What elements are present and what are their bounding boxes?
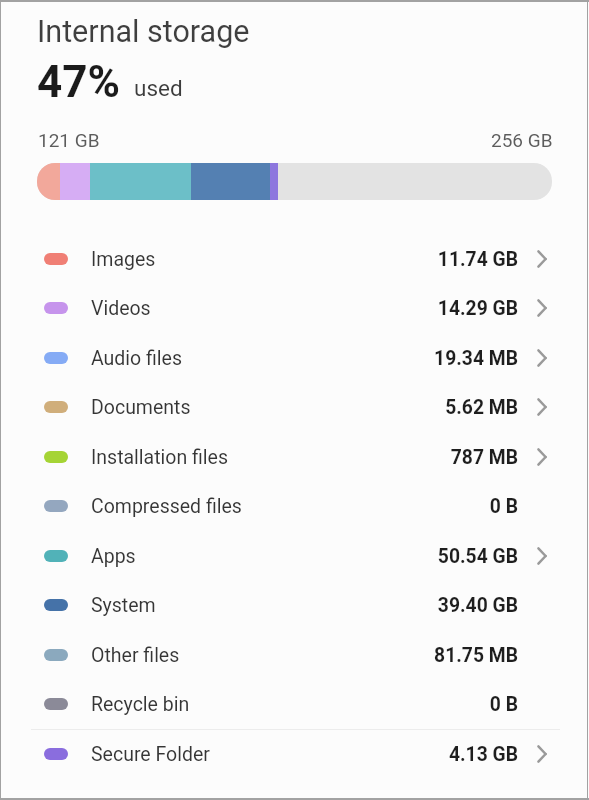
staticText: Documents bbox=[91, 396, 191, 419]
button[interactable]: Other files bbox=[0, 630, 589, 680]
staticText: Other files bbox=[91, 644, 180, 667]
button[interactable]: Installation files bbox=[0, 432, 589, 482]
staticText: Secure Folder bbox=[91, 743, 210, 766]
other: Open Audio files details bbox=[518, 348, 560, 368]
button[interactable]: Documents bbox=[0, 382, 589, 432]
staticText: 4.13 GB bbox=[448, 743, 518, 766]
other: Open Apps details bbox=[518, 546, 560, 566]
staticText: Internal storage bbox=[37, 14, 250, 50]
staticText: Recycle bin bbox=[91, 693, 190, 716]
staticText: 47% bbox=[37, 56, 120, 108]
button[interactable]: Audio files bbox=[0, 333, 589, 383]
other: Open Images details bbox=[518, 249, 560, 269]
button[interactable]: System bbox=[0, 580, 589, 630]
staticText: 0 B bbox=[489, 693, 518, 716]
other: Open Installation files details bbox=[518, 447, 560, 467]
staticText: 0 B bbox=[489, 495, 518, 518]
staticText: System bbox=[91, 594, 156, 617]
button[interactable]: Compressed files bbox=[0, 481, 589, 531]
staticText: 14.29 GB bbox=[437, 297, 518, 320]
staticText: Videos bbox=[91, 297, 151, 320]
staticText: 121 GB bbox=[38, 129, 100, 151]
staticText: Compressed files bbox=[91, 495, 242, 518]
button[interactable]: Secure Folder bbox=[0, 729, 589, 779]
button[interactable]: Recycle bin bbox=[0, 679, 589, 729]
staticText: 787 MB bbox=[450, 446, 518, 469]
staticText: Audio files bbox=[91, 347, 183, 370]
button[interactable]: Videos bbox=[0, 283, 589, 333]
staticText: 50.54 GB bbox=[437, 545, 518, 568]
button[interactable]: Apps bbox=[0, 531, 589, 581]
staticText: 256 GB bbox=[491, 129, 553, 151]
staticText: Apps bbox=[91, 545, 136, 568]
staticText: Images bbox=[91, 248, 156, 271]
staticText: 5.62 MB bbox=[445, 396, 518, 419]
staticText: 19.34 MB bbox=[434, 347, 518, 370]
button[interactable]: Images bbox=[0, 234, 589, 284]
other: Open Documents details bbox=[518, 397, 560, 417]
other: Open Videos details bbox=[518, 298, 560, 318]
staticText: Installation files bbox=[91, 446, 229, 469]
staticText: 11.74 GB bbox=[437, 248, 518, 271]
other: Open Secure Folder details bbox=[518, 744, 560, 764]
staticText: used bbox=[134, 75, 183, 101]
staticText: 39.40 GB bbox=[437, 594, 518, 617]
staticText: 81.75 MB bbox=[434, 644, 518, 667]
